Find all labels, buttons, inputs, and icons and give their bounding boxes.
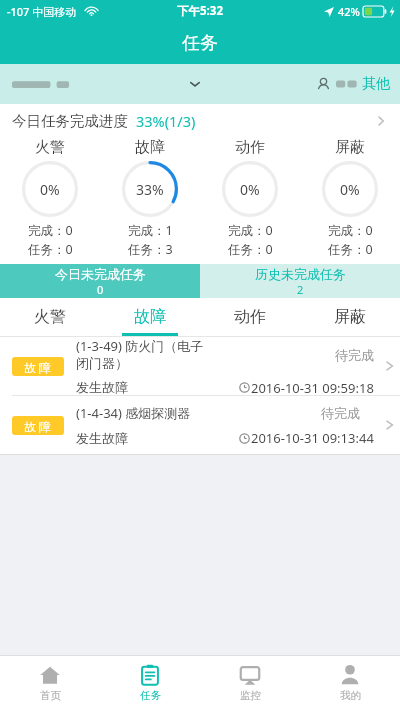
staticText: 火警 [34, 307, 66, 327]
staticText: 故障 [134, 307, 166, 327]
staticText: 故障 [135, 138, 165, 157]
staticText: 2016-10-31 09:13:44 [251, 429, 374, 447]
staticText: 0% [340, 180, 360, 199]
button[interactable]: 故障 [100, 298, 200, 336]
staticText: 今日任务完成进度 [12, 112, 128, 130]
staticText: 2016-10-31 09:59:18 [251, 379, 374, 395]
button[interactable]: Home [0, 656, 100, 710]
staticText: 屏蔽 [334, 307, 366, 327]
button[interactable]: 今日未完成任务 [0, 264, 200, 298]
staticText: 故 障 [24, 359, 52, 375]
staticText: 任务：0 [28, 241, 73, 258]
button[interactable]: 屏蔽 [300, 298, 400, 336]
staticText: 0% [40, 180, 60, 199]
other: Tasks [139, 664, 161, 686]
button[interactable]: Account [316, 64, 400, 104]
button[interactable]: 动作 [200, 298, 300, 336]
button[interactable] [0, 64, 316, 104]
button[interactable]: 故 障 [0, 337, 400, 395]
button[interactable]: 火警 [0, 298, 100, 336]
staticText: 42% [338, 4, 360, 19]
staticText: (1-4-34) 感烟探测器 [76, 404, 191, 422]
staticText: 待完成 [321, 405, 360, 421]
other: Home [39, 664, 61, 686]
staticText: 任务：0 [228, 241, 273, 258]
staticText: 动作 [234, 307, 266, 327]
staticText: 发生故障 [76, 379, 128, 395]
staticText: 完成：0 [328, 222, 373, 239]
staticText: 动作 [235, 138, 265, 157]
staticText: 火警 [35, 138, 65, 157]
staticText: 完成：1 [128, 222, 173, 239]
staticText: 任务：0 [328, 241, 373, 258]
staticText: 任务 [140, 689, 161, 702]
staticText: (1-3-49) 防火门（电子闭门器） [76, 337, 205, 372]
staticText: 首页 [40, 689, 61, 702]
staticText: 33% [136, 180, 164, 199]
staticText: 故 障 [24, 418, 52, 434]
other: Account [316, 77, 331, 92]
staticText: 0 [97, 282, 104, 297]
staticText: 监控 [240, 689, 261, 702]
other: Profile [339, 664, 361, 686]
button[interactable]: Tasks [100, 656, 200, 710]
staticText: 任务：3 [128, 241, 173, 258]
staticText: 历史未完成任务 [255, 266, 346, 282]
staticText: 今日未完成任务 [55, 266, 146, 282]
staticText: -107 中国移动 [7, 4, 77, 19]
button[interactable]: 故 障 [0, 396, 400, 454]
other: Monitor [239, 664, 261, 686]
staticText: 2 [297, 282, 304, 297]
staticText: 33%(1/3) [136, 111, 196, 131]
staticText: 完成：0 [228, 222, 273, 239]
staticText: 0% [240, 180, 260, 199]
button[interactable]: Profile [300, 656, 400, 710]
staticText: 其他 [362, 75, 390, 93]
staticText: 下午5:32 [177, 3, 223, 19]
staticText: 完成：0 [28, 222, 73, 239]
staticText: 发生故障 [76, 430, 128, 446]
staticText: 待完成 [335, 347, 374, 363]
button[interactable]: 历史未完成任务 [200, 264, 400, 298]
staticText: 我的 [340, 689, 361, 702]
button[interactable]: 今日任务完成进度 [0, 104, 400, 138]
staticText: 任务 [182, 32, 218, 55]
button[interactable]: Monitor [200, 656, 300, 710]
staticText: 屏蔽 [335, 138, 365, 157]
